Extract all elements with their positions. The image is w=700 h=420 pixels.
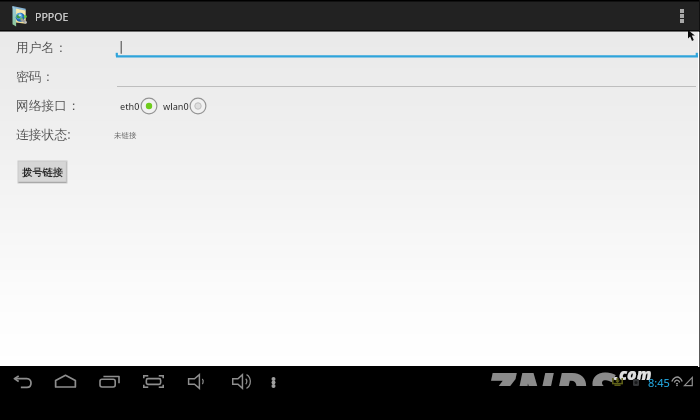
button[interactable]: eth0	[120, 97, 158, 115]
staticText: 拨号链接	[22, 166, 63, 179]
button[interactable]: wlan0	[163, 97, 207, 115]
button[interactable]: Recent apps	[94, 370, 126, 393]
button[interactable]	[112, 68, 697, 88]
button[interactable]: 拨号链接	[18, 161, 67, 183]
staticText: PPPOE	[35, 10, 69, 24]
staticText: .com	[614, 367, 652, 385]
staticText: eth0	[120, 100, 140, 112]
button[interactable]: Screenshot	[137, 369, 170, 394]
staticText: ZNDS	[490, 367, 616, 386]
staticText: 未链接	[114, 131, 137, 140]
button[interactable]: Back	[8, 370, 38, 394]
button[interactable]	[112, 38, 698, 58]
button[interactable]: More options	[670, 2, 694, 30]
staticText: 网络接口：	[16, 98, 80, 114]
button[interactable]: Volume down	[182, 368, 209, 395]
staticText: wlan0	[163, 100, 189, 112]
staticText: 连接状态:	[16, 125, 71, 142]
button[interactable]: More	[265, 371, 282, 394]
staticText: 8:45	[648, 375, 670, 390]
button[interactable]: Home	[49, 369, 82, 393]
staticText: 密码：	[16, 69, 55, 85]
button[interactable]: Volume up	[226, 368, 256, 395]
staticText: 用户名：	[16, 40, 68, 56]
